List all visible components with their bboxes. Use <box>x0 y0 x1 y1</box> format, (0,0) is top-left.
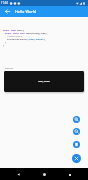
staticText: main(String[] args) { <box>26 32 48 35</box>
staticText: } <box>5 41 6 44</box>
staticText: Hello World <box>15 9 37 14</box>
staticText: Output <box>5 66 14 69</box>
staticText: Main { <box>17 29 24 32</box>
staticText: void <box>20 32 26 35</box>
staticText: Hello, World! <box>38 80 50 83</box>
button[interactable]: Zoom out <box>73 128 80 135</box>
staticText: static <box>13 32 20 35</box>
staticText: ); <box>44 38 46 41</box>
button[interactable]: Zoom in <box>73 116 80 123</box>
button[interactable]: Copy code <box>73 141 80 148</box>
staticText: } <box>3 44 4 47</box>
staticText: public <box>3 29 11 32</box>
staticText: public <box>5 32 13 35</box>
staticText: // print output <box>7 35 23 38</box>
button[interactable]: Close <box>72 154 81 163</box>
button[interactable]: Back <box>10 168 26 180</box>
button[interactable]: Recents <box>62 168 78 180</box>
staticText: class <box>11 29 17 32</box>
staticText: "Hello, World!" <box>28 38 44 41</box>
button[interactable]: Home <box>36 168 52 180</box>
staticText: 11:34 <box>1 1 8 5</box>
staticText: System.out.println( <box>7 38 28 41</box>
button[interactable]: Back <box>0 6 15 17</box>
